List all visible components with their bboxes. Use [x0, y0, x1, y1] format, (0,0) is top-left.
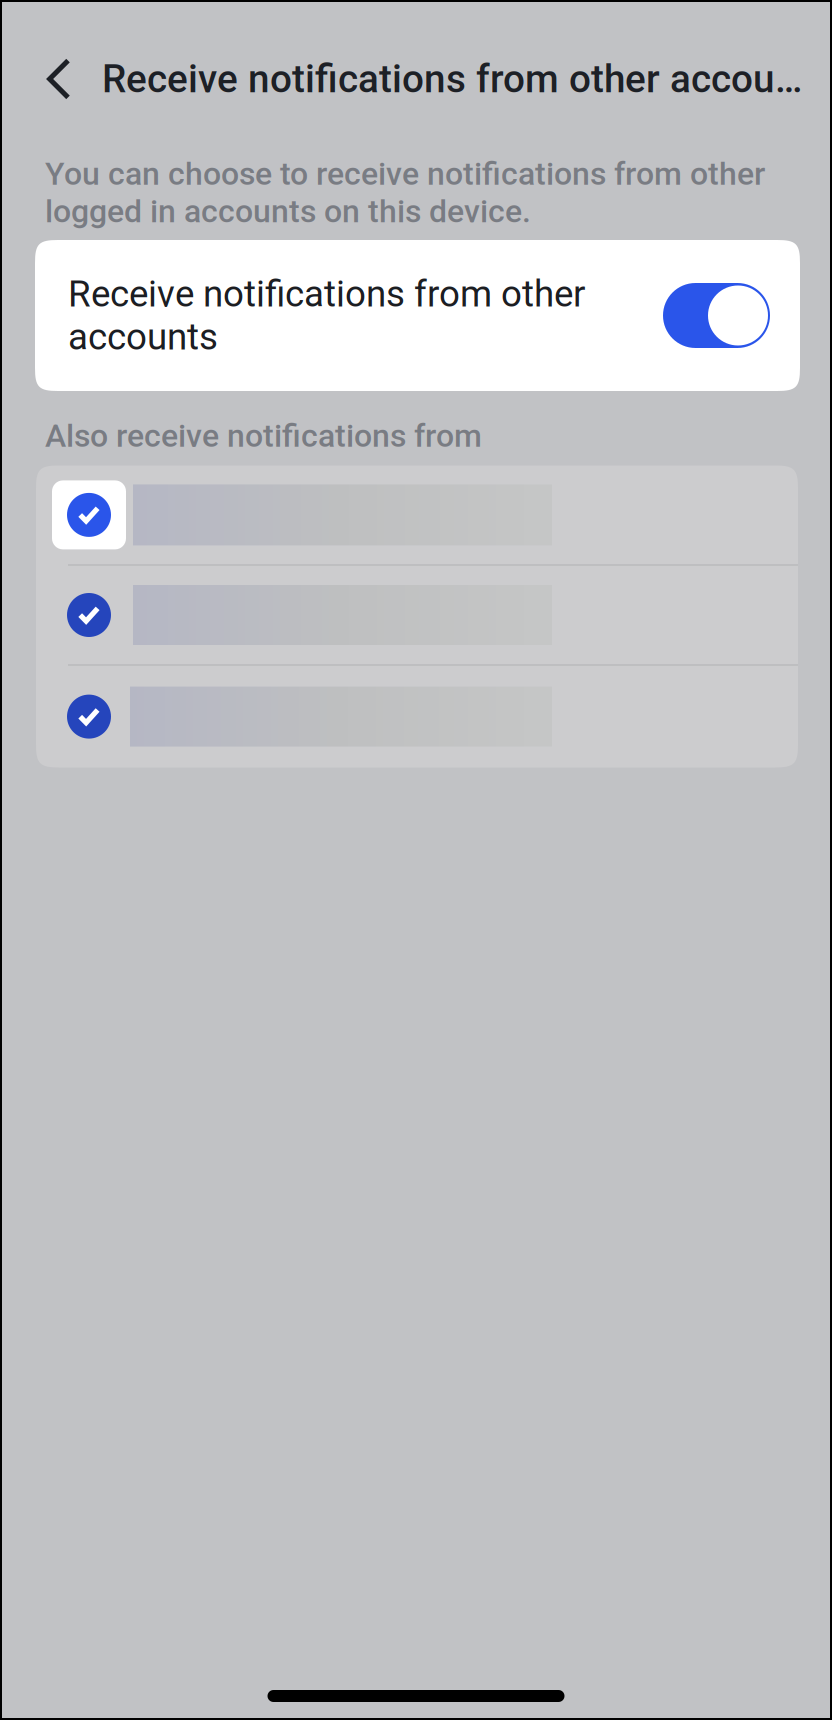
staticText: Receive notifications from other accou… [102, 56, 802, 102]
staticText: Also receive notifications from [45, 417, 482, 454]
button[interactable]: Account 1 [36, 465, 798, 564]
button[interactable]: Back [0, 0, 832, 100]
button[interactable]: Account 3 [36, 666, 798, 768]
staticText: Receive notifications from other account… [68, 272, 585, 358]
button[interactable]: Receive notifications from other account… [35, 240, 800, 391]
button[interactable]: Account 2 [36, 566, 798, 664]
staticText: You can choose to receive notifications … [45, 155, 765, 230]
